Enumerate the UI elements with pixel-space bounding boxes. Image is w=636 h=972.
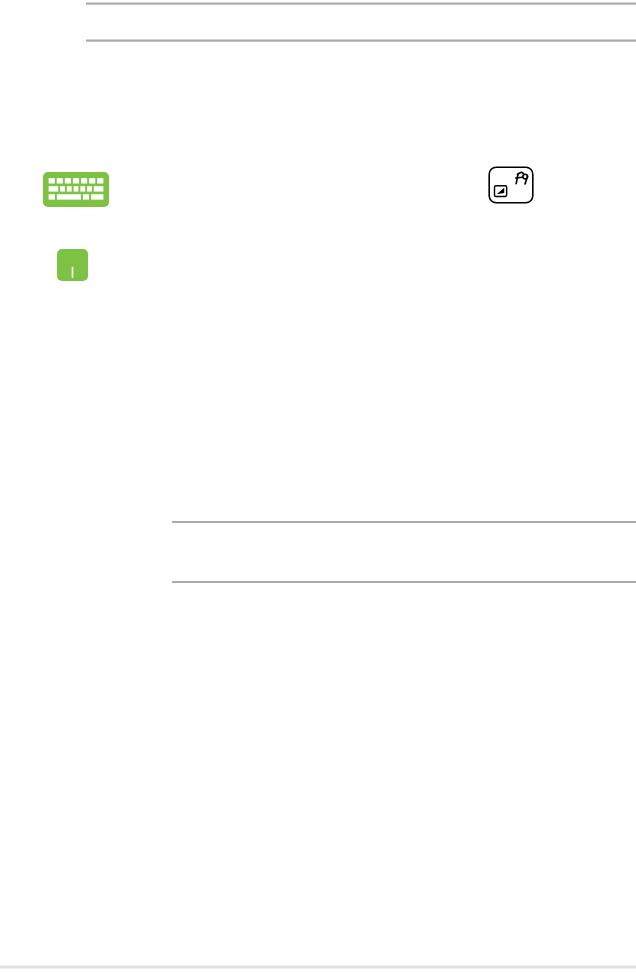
- button[interactable]: Keyboard: [43, 172, 109, 207]
- button[interactable]: Touchpad: [57, 249, 88, 281]
- button[interactable]: f9 key: [488, 166, 534, 204]
